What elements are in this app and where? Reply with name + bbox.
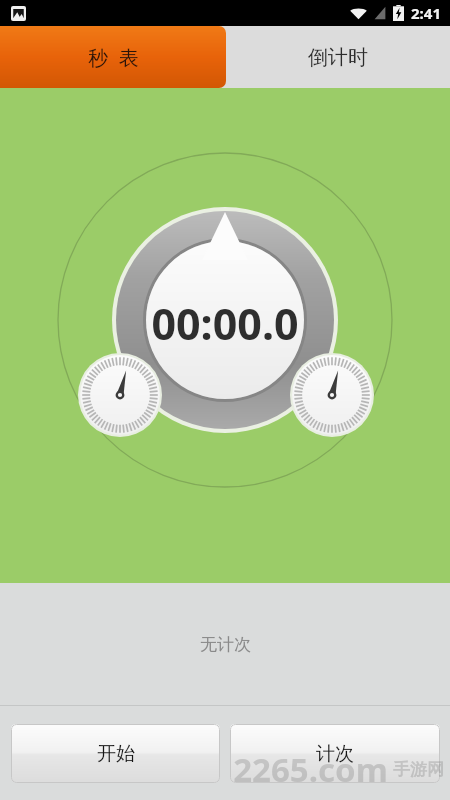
- button[interactable]: 开始: [11, 724, 220, 783]
- staticText: 秒 表: [88, 44, 139, 71]
- button[interactable]: 计次: [230, 724, 440, 783]
- staticText: 无计次: [200, 634, 251, 655]
- staticText: 倒计时: [308, 45, 368, 70]
- staticText: 计次: [316, 742, 354, 766]
- staticText: 开始: [97, 742, 135, 766]
- staticText: 2265.com: [233, 747, 388, 792]
- staticText: 2:41: [411, 3, 441, 23]
- button[interactable]: 秒 表: [0, 26, 226, 88]
- staticText: 手游网: [393, 759, 444, 780]
- staticText: 00:00.0: [151, 294, 299, 353]
- other: Sub dial: [78, 353, 162, 437]
- button[interactable]: 倒计时: [226, 26, 450, 88]
- other: Sub dial: [290, 353, 374, 437]
